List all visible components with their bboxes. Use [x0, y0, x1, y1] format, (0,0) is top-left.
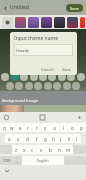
staticText: j — [60, 136, 62, 142]
staticText: y — [44, 125, 47, 131]
button[interactable]: o — [68, 123, 77, 132]
button[interactable]: Theme — [28, 17, 39, 28]
button[interactable]: Key — [72, 82, 80, 90]
button[interactable]: Key — [67, 73, 75, 81]
button[interactable]: e — [16, 123, 24, 132]
staticText: l — [76, 136, 78, 142]
button[interactable]: v — [37, 145, 46, 154]
button[interactable]: z — [12, 145, 20, 154]
staticText: n — [58, 147, 61, 153]
button[interactable]: Theme — [80, 17, 85, 28]
staticText: a — [8, 136, 11, 142]
staticText: Input theme name — [14, 35, 58, 42]
button[interactable]: h — [49, 134, 57, 143]
button[interactable]: Theme — [67, 17, 78, 28]
button[interactable]: Key — [30, 73, 38, 81]
button[interactable]: p — [77, 123, 86, 132]
button[interactable]: g — [41, 134, 49, 143]
button[interactable]: r — [24, 123, 32, 132]
button[interactable]: k — [65, 134, 73, 143]
button[interactable]: b — [46, 145, 55, 154]
button[interactable]: d — [23, 134, 32, 143]
button[interactable]: Key — [44, 82, 52, 90]
button[interactable]: u — [50, 123, 59, 132]
staticText: w — [10, 125, 14, 131]
button[interactable]: Theme — [54, 17, 65, 28]
button[interactable]: New theme — [2, 17, 13, 28]
button[interactable]: a — [5, 134, 14, 143]
staticText: t — [36, 125, 38, 131]
staticText: e — [19, 125, 22, 131]
staticText: s — [17, 136, 20, 142]
staticText: p — [80, 125, 83, 131]
staticText: q — [3, 125, 6, 131]
button[interactable]: Key — [48, 73, 56, 81]
button[interactable]: n — [55, 145, 64, 154]
button[interactable]: i — [59, 123, 68, 132]
button[interactable]: . — [64, 156, 73, 165]
button[interactable]: l — [73, 134, 81, 143]
button[interactable]: Key — [53, 82, 61, 90]
button[interactable]: Key — [15, 82, 23, 90]
button[interactable]: j — [57, 134, 65, 143]
button[interactable]: Background image — [0, 105, 24, 112]
button[interactable]: Cancel — [39, 66, 56, 73]
button[interactable]: Key — [34, 82, 42, 90]
button[interactable]: s — [14, 134, 23, 143]
staticText: b — [49, 147, 52, 153]
staticText: ?123 — [3, 158, 11, 163]
button[interactable]: w — [8, 123, 16, 132]
staticText: g — [44, 136, 47, 142]
button[interactable]: Hide keyboard — [3, 167, 10, 174]
staticText: m — [66, 147, 71, 153]
button[interactable]: c — [28, 145, 37, 154]
button[interactable]: Settings — [76, 114, 83, 121]
button[interactable]: Key — [77, 73, 85, 81]
staticText: Howdy — [16, 48, 29, 53]
staticText: v — [40, 147, 43, 153]
staticText: x — [23, 147, 26, 153]
staticText: d — [26, 136, 29, 142]
button[interactable]: Clipboard — [39, 114, 46, 121]
staticText: o — [71, 125, 74, 131]
button[interactable]: m — [64, 145, 73, 154]
staticText: Untitled — [10, 4, 29, 11]
staticText: c — [31, 147, 34, 153]
button[interactable]: Key — [1, 73, 9, 81]
staticText: . — [68, 158, 70, 164]
staticText: Save — [62, 67, 71, 72]
button[interactable]: Key — [20, 73, 28, 81]
button[interactable]: English — [22, 156, 64, 165]
button[interactable]: x — [20, 145, 28, 154]
staticText: z — [15, 147, 18, 153]
button[interactable]: ?123 — [0, 156, 13, 165]
staticText: i — [63, 125, 65, 131]
staticText: u — [53, 125, 56, 131]
button[interactable]: Theme — [15, 17, 26, 28]
staticText: k — [68, 136, 71, 142]
button[interactable]: Key — [63, 82, 71, 90]
staticText: , — [17, 158, 19, 164]
button[interactable]: Key — [25, 82, 33, 90]
button[interactable]: Key — [6, 82, 14, 90]
button[interactable]: , — [13, 156, 22, 165]
button[interactable]: Howdy — [14, 44, 73, 56]
button[interactable]: Save — [60, 66, 73, 73]
button[interactable]: Key — [39, 73, 47, 81]
button[interactable]: f — [32, 134, 41, 143]
button[interactable]: y — [41, 123, 50, 132]
button[interactable]: Key — [11, 73, 19, 81]
button[interactable]: Emoji — [3, 114, 10, 121]
button[interactable]: Back — [0, 3, 10, 13]
staticText: r — [27, 125, 29, 131]
button[interactable]: Theme — [41, 17, 52, 28]
button[interactable]: Key — [58, 73, 66, 81]
button[interactable]: t — [32, 123, 41, 132]
staticText: English — [37, 158, 49, 163]
button[interactable]: q — [0, 123, 8, 132]
staticText: h — [52, 136, 55, 142]
button[interactable]: Save — [66, 4, 83, 12]
